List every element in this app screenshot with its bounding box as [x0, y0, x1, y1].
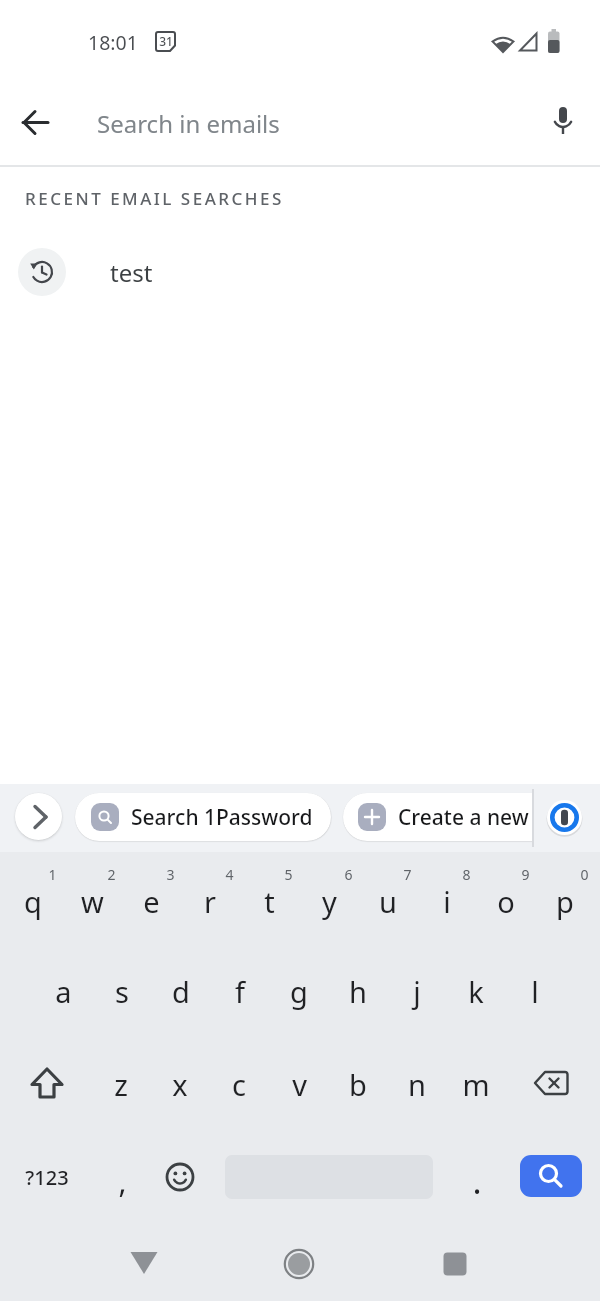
button[interactable]: [15, 793, 62, 840]
staticText: 2: [107, 865, 116, 884]
staticText: 6: [344, 865, 353, 884]
button[interactable]: [4, 852, 62, 944]
button[interactable]: [270, 1038, 328, 1130]
button[interactable]: [546, 799, 583, 836]
staticText: 18:01: [88, 29, 138, 56]
button[interactable]: [210, 1038, 268, 1130]
button[interactable]: test: [0, 242, 600, 302]
staticText: k: [468, 972, 484, 1011]
staticText: 0: [580, 865, 589, 884]
staticText: i: [443, 882, 451, 921]
button[interactable]: [538, 97, 588, 147]
button[interactable]: [63, 852, 121, 944]
button[interactable]: [447, 1038, 505, 1130]
button[interactable]: Search 1Password: [75, 793, 331, 841]
staticText: u: [379, 882, 397, 921]
staticText: o: [497, 882, 515, 921]
staticText: .: [472, 1158, 482, 1204]
button[interactable]: [448, 1131, 506, 1223]
button[interactable]: [122, 852, 180, 944]
staticText: d: [172, 972, 190, 1011]
button[interactable]: [300, 852, 358, 944]
staticText: l: [531, 972, 539, 1011]
staticText: 5: [284, 865, 293, 884]
button[interactable]: [418, 852, 476, 944]
button[interactable]: [270, 945, 328, 1037]
button[interactable]: [520, 1155, 582, 1197]
staticText: 9: [521, 865, 530, 884]
staticText: r: [204, 882, 216, 921]
button[interactable]: [92, 1038, 150, 1130]
button[interactable]: [329, 1038, 387, 1130]
staticText: Search 1Password: [131, 803, 313, 832]
button[interactable]: [240, 852, 298, 944]
staticText: test: [110, 256, 153, 289]
button[interactable]: [359, 852, 417, 944]
button[interactable]: [93, 945, 151, 1037]
staticText: 4: [225, 865, 234, 884]
button[interactable]: [447, 945, 505, 1037]
staticText: g: [290, 972, 308, 1011]
staticText: m: [462, 1065, 490, 1104]
staticText: x: [172, 1065, 188, 1104]
staticText: z: [114, 1065, 128, 1104]
staticText: b: [349, 1065, 367, 1104]
staticText: RECENT EMAIL SEARCHES: [25, 187, 284, 210]
button[interactable]: [34, 945, 92, 1037]
staticText: v: [292, 1065, 307, 1104]
staticText: 31: [159, 33, 173, 49]
staticText: 8: [462, 865, 471, 884]
staticText: s: [115, 972, 129, 1011]
staticText: y: [322, 882, 337, 921]
button[interactable]: [151, 1131, 209, 1223]
button[interactable]: [104, 1228, 184, 1298]
button[interactable]: [477, 852, 535, 944]
button[interactable]: [506, 945, 564, 1037]
staticText: p: [556, 882, 574, 921]
button[interactable]: [259, 1229, 339, 1299]
staticText: 3: [166, 865, 175, 884]
staticText: 1: [48, 865, 57, 884]
staticText: 7: [403, 865, 412, 884]
staticText: ,: [118, 1161, 127, 1202]
staticText: j: [413, 972, 421, 1011]
button[interactable]: [415, 1229, 495, 1299]
button[interactable]: [151, 1038, 209, 1130]
staticText: f: [235, 972, 245, 1011]
staticText: ?123: [25, 1164, 69, 1191]
staticText: w: [81, 882, 104, 921]
staticText: e: [143, 882, 160, 921]
button[interactable]: [329, 945, 387, 1037]
button[interactable]: [536, 852, 594, 944]
staticText: Search in emails: [97, 107, 280, 140]
staticText: c: [232, 1065, 246, 1104]
button[interactable]: [181, 852, 239, 944]
staticText: q: [24, 882, 42, 921]
button[interactable]: [3, 1131, 91, 1223]
button[interactable]: [152, 945, 210, 1037]
button[interactable]: [211, 945, 269, 1037]
button[interactable]: Create a new: [343, 793, 532, 841]
staticText: t: [264, 882, 275, 921]
button[interactable]: [388, 945, 446, 1037]
button[interactable]: [93, 1131, 151, 1223]
button[interactable]: [11, 98, 61, 148]
staticText: Create a new: [398, 803, 529, 832]
button[interactable]: [388, 1038, 446, 1130]
staticText: n: [408, 1065, 426, 1104]
staticText: a: [55, 972, 72, 1011]
staticText: h: [349, 972, 367, 1011]
button[interactable]: [507, 1038, 595, 1130]
button[interactable]: [3, 1038, 91, 1130]
